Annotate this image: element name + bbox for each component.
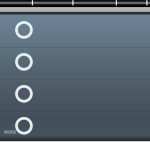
button[interactable]: Channel 4 bbox=[0, 112, 150, 142]
staticText: MODE bbox=[4, 129, 16, 135]
button[interactable]: Channel 2 bbox=[0, 48, 150, 79]
button[interactable]: Channel 3 bbox=[0, 80, 150, 111]
button[interactable]: Channel 1 bbox=[0, 16, 150, 47]
